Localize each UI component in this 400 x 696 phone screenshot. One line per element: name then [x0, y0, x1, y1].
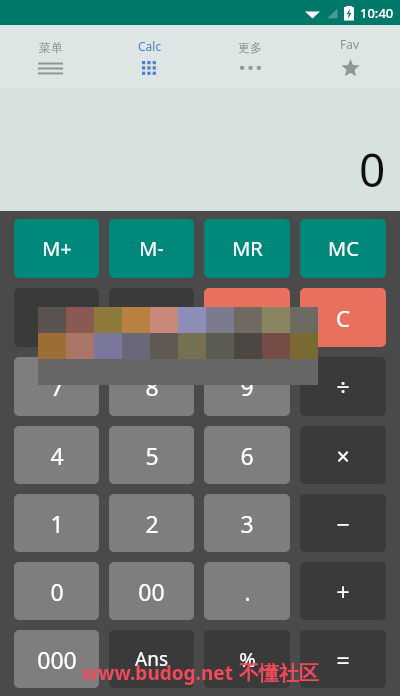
button[interactable]: % — [204, 630, 290, 688]
staticText: 3 — [240, 508, 254, 539]
staticText: CE — [235, 304, 259, 331]
button[interactable]: 5 — [109, 426, 194, 484]
staticText: 6 — [240, 440, 254, 471]
button[interactable]: 9 — [204, 357, 290, 416]
button[interactable]: M+ — [14, 219, 99, 278]
staticText: 更多 — [238, 40, 262, 55]
button[interactable]: MC — [300, 219, 386, 278]
staticText: 000 — [37, 644, 77, 675]
staticText: 1 — [50, 508, 64, 539]
staticText: C — [336, 303, 350, 333]
staticText: Ans — [135, 646, 168, 672]
button[interactable]: ) — [109, 288, 194, 347]
staticText: 10:40 — [360, 4, 394, 22]
button[interactable]: 8 — [109, 357, 194, 416]
staticText: 4 — [50, 440, 64, 471]
staticText: MR — [232, 235, 263, 262]
staticText: 2 — [145, 508, 159, 539]
button[interactable]: 00 — [109, 562, 194, 620]
button[interactable]: 7 — [14, 357, 99, 416]
button[interactable]: 000 — [14, 630, 99, 688]
button[interactable]: 6 — [204, 426, 290, 484]
button[interactable]: Menu — [0, 25, 100, 89]
staticText: Fav — [340, 36, 360, 52]
staticText: M+ — [42, 235, 72, 262]
staticText: 7 — [50, 371, 64, 402]
staticText: M- — [139, 235, 164, 262]
button[interactable]: Ans — [109, 630, 194, 688]
staticText: % — [239, 646, 256, 673]
button[interactable]: − — [300, 494, 386, 552]
button[interactable]: 1 — [14, 494, 99, 552]
staticText: 8 — [145, 371, 159, 402]
staticText: + — [336, 576, 350, 607]
staticText: 0 — [359, 138, 386, 201]
button[interactable]: C — [300, 288, 386, 347]
staticText: = — [336, 644, 350, 675]
staticText: 菜单 — [39, 40, 63, 55]
button[interactable]: 3 — [204, 494, 290, 552]
button[interactable]: MR — [204, 219, 290, 278]
button[interactable]: 2 — [109, 494, 194, 552]
staticText: Calc — [138, 38, 162, 54]
staticText: 5 — [145, 440, 159, 471]
button[interactable]: 0 — [14, 562, 99, 620]
button[interactable]: M- — [109, 219, 194, 278]
button[interactable]: 4 — [14, 426, 99, 484]
staticText: 00 — [138, 576, 165, 607]
button[interactable]: ÷ — [300, 357, 386, 416]
staticText: . — [244, 576, 251, 607]
staticText: 0 — [50, 576, 64, 607]
staticText: ) — [148, 303, 155, 333]
staticText: 不懂社区 — [239, 661, 319, 686]
button[interactable]: Calculator — [100, 25, 200, 89]
button[interactable]: CE — [204, 288, 290, 347]
staticText: ÷ — [336, 371, 350, 402]
staticText: − — [336, 508, 350, 539]
button[interactable]: + — [300, 562, 386, 620]
button[interactable]: × — [300, 426, 386, 484]
staticText: ( — [53, 303, 60, 333]
staticText: 9 — [240, 371, 254, 402]
staticText: MC — [328, 235, 359, 262]
button[interactable]: Favorites — [300, 25, 400, 89]
button[interactable]: = — [300, 630, 386, 688]
staticText: × — [336, 440, 350, 471]
button[interactable]: More — [200, 25, 300, 89]
staticText: www.budog.net — [82, 660, 233, 686]
button[interactable]: ( — [14, 288, 99, 347]
button[interactable]: . — [204, 562, 290, 620]
